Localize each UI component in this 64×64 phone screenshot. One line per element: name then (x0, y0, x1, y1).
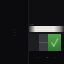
button[interactable]: Item (39, 34, 48, 51)
button[interactable]: Primary action (48, 34, 61, 51)
button[interactable] (29, 26, 64, 32)
